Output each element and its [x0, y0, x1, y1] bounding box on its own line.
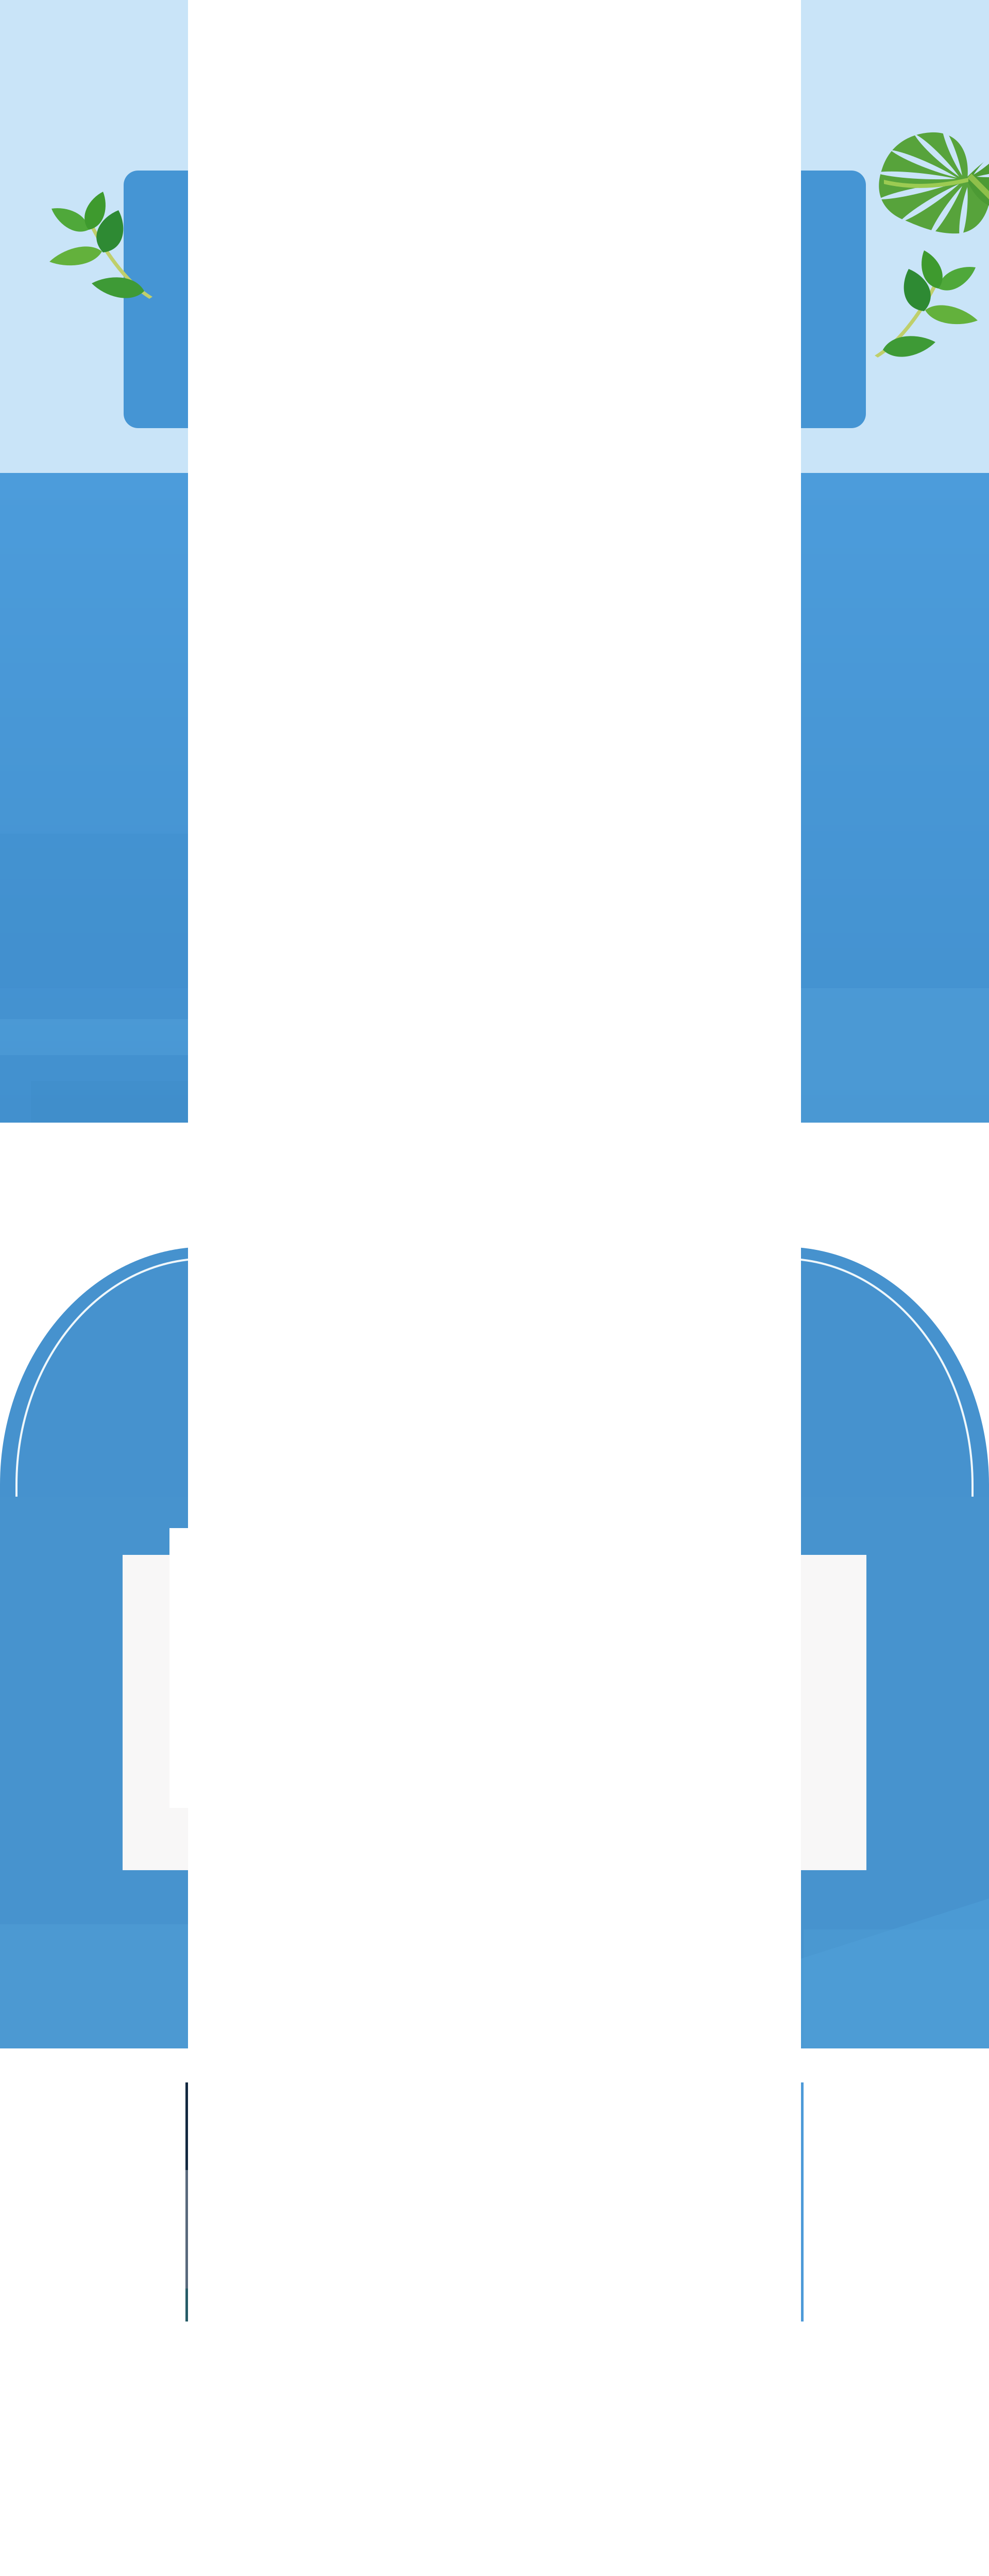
- button[interactable]: Wellbeing habits that fit your week: [0, 0, 989, 2576]
- button[interactable]: Work smarter, not harder every day: [0, 0, 989, 2576]
